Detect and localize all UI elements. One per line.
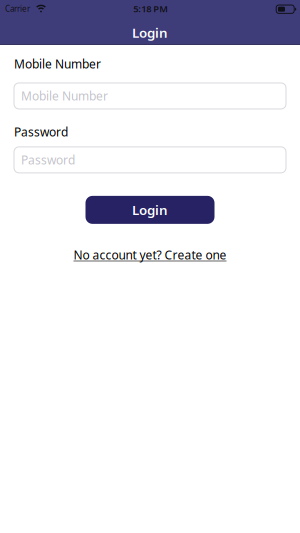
textField[interactable]: Mobile Number <box>14 83 286 109</box>
staticText: Mobile Number <box>21 88 108 104</box>
button[interactable]: No account yet? Create one <box>73 247 226 263</box>
staticText: No account yet? Create one <box>73 247 226 263</box>
staticText: Mobile Number <box>14 56 101 72</box>
staticText: Carrier <box>5 3 30 14</box>
staticText: Login <box>132 201 168 219</box>
staticText: Password <box>21 152 75 168</box>
staticText: Password <box>14 124 68 140</box>
button[interactable]: Login <box>85 196 214 224</box>
staticText: Login <box>132 24 168 41</box>
textField[interactable]: Password <box>14 147 286 173</box>
staticText: 5:18 PM <box>133 2 168 15</box>
